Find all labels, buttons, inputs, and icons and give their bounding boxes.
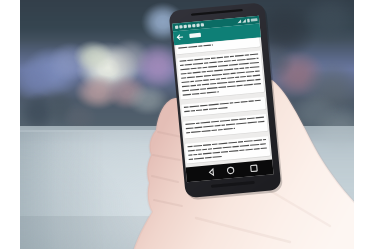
other: Phone in hand bbox=[0, 0, 374, 249]
button[interactable] bbox=[0, 0, 374, 249]
